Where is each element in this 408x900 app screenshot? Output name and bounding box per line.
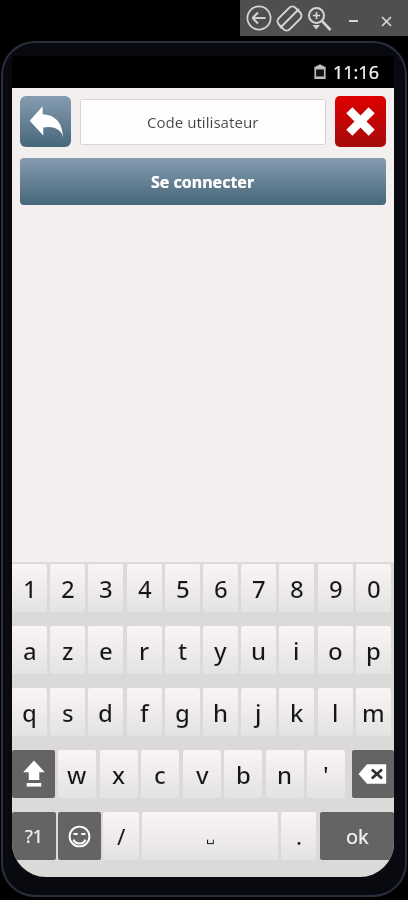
button[interactable]: Touche [320,812,394,860]
staticText: b [236,758,251,791]
staticText: j [255,696,262,729]
staticText: o [328,634,343,667]
button[interactable]: j [241,688,276,736]
staticText: 11:16 [333,60,380,85]
button[interactable]: Se connecter [20,158,386,205]
button[interactable]: m [356,688,391,736]
button[interactable]: Back [245,4,273,32]
button[interactable]: Touche [12,750,55,798]
staticText: f [140,696,149,729]
staticText: v [196,758,209,791]
staticText: Se connecter [151,171,255,193]
staticText: 3 [99,572,113,605]
button[interactable]: d [88,688,123,736]
staticText: ok [346,823,369,850]
staticText: a [23,634,37,667]
button[interactable]: n [266,750,304,798]
staticText: m [362,696,385,729]
button[interactable]: Close [373,8,399,34]
staticText: s [62,696,74,729]
staticText: q [22,696,37,729]
button[interactable]: 0 [356,564,391,612]
staticText: h [213,696,229,729]
staticText: l [332,696,339,729]
button[interactable]: f [127,688,162,736]
button[interactable]: Rotate [276,5,302,31]
button[interactable]: 3 [88,564,123,612]
button[interactable]: 6 [203,564,238,612]
button[interactable]: Minimize [340,8,366,34]
staticText: t [178,634,188,667]
button[interactable]: Code utilisateur [81,100,325,144]
button[interactable]: v [183,750,221,798]
button[interactable]: a [12,626,47,674]
staticText: c [154,758,166,791]
button[interactable]: y [203,626,238,674]
staticText: g [175,696,190,729]
button[interactable]: 7 [241,564,276,612]
staticText: e [99,634,113,667]
button[interactable]: s [50,688,85,736]
staticText: Code utilisateur [147,112,259,132]
staticText: 1 [23,572,37,605]
button[interactable]: e [88,626,123,674]
button[interactable]: Touche [58,812,101,860]
button[interactable]: g [165,688,200,736]
staticText: ' [323,758,329,791]
staticText: 5 [176,572,190,605]
staticText: 4 [138,572,152,605]
button[interactable]: 1 [12,564,47,612]
staticText: i [293,634,300,667]
button[interactable]: q [12,688,47,736]
button[interactable]: Zoom [305,5,332,32]
staticText: x [112,758,126,791]
staticText: . [296,821,302,851]
button[interactable]: 2 [50,564,85,612]
staticText: 8 [290,572,304,605]
staticText: ?1 [25,824,44,849]
staticText: k [290,696,304,729]
button[interactable]: b [224,750,262,798]
button[interactable]: ␣ [142,812,278,860]
button[interactable]: u [241,626,276,674]
staticText: p [366,634,381,667]
staticText: 2 [61,572,75,605]
button[interactable]: 8 [279,564,314,612]
staticText: 6 [214,572,228,605]
button[interactable]: 5 [165,564,200,612]
button[interactable]: r [127,626,162,674]
button[interactable]: p [356,626,391,674]
staticText: / [117,821,126,851]
button[interactable]: w [58,750,96,798]
button[interactable]: x [100,750,138,798]
staticText: w [67,758,87,791]
button[interactable]: Touche [352,750,394,798]
button[interactable]: . [281,812,316,860]
button[interactable]: l [318,688,353,736]
button[interactable]: c [141,750,179,798]
button[interactable]: t [165,626,200,674]
button[interactable]: Effacer [335,96,386,147]
button[interactable]: / [103,812,139,860]
staticText: n [277,758,293,791]
staticText: y [214,634,227,667]
button[interactable]: ' [307,750,345,798]
button[interactable]: 9 [318,564,353,612]
staticText: 0 [367,572,381,605]
staticText: u [251,634,267,667]
staticText: d [98,696,113,729]
staticText: ␣ [206,828,215,844]
button[interactable]: z [50,626,85,674]
button[interactable]: Touche [12,812,56,860]
button[interactable]: Retour [20,96,71,147]
staticText: 7 [252,572,266,605]
staticText: z [62,634,74,667]
staticText: 9 [329,572,343,605]
button[interactable]: i [279,626,314,674]
staticText: r [139,634,150,667]
button[interactable]: 4 [127,564,162,612]
button[interactable]: h [203,688,238,736]
button[interactable]: k [279,688,314,736]
button[interactable]: o [318,626,353,674]
